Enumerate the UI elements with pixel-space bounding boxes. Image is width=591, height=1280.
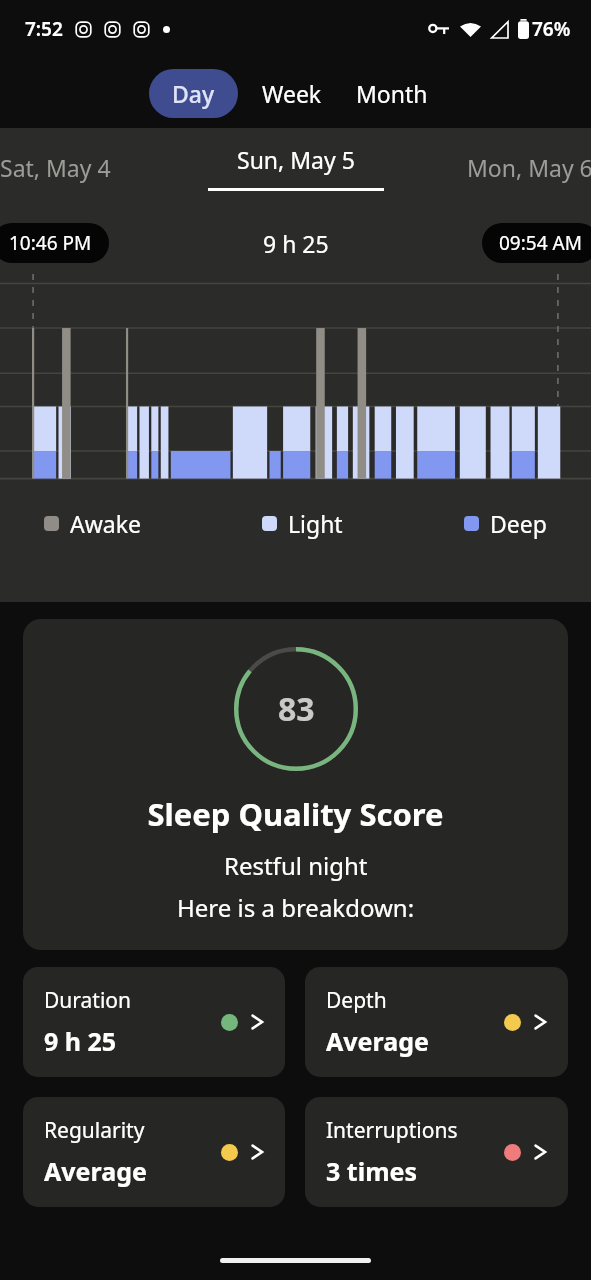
button[interactable]: 83 — [23, 619, 568, 950]
button[interactable]: Regularity — [23, 1097, 285, 1207]
staticText: 10:46 PM — [9, 230, 92, 256]
staticText: Awake — [70, 508, 141, 539]
staticText: 9 h 25 — [44, 1024, 117, 1058]
button[interactable]: Week — [247, 69, 337, 118]
staticText: Here is a breakdown: — [177, 891, 415, 924]
staticText: Light — [288, 508, 343, 539]
other: Open Regularity — [251, 1142, 264, 1162]
staticText: 7:52 — [25, 16, 63, 42]
other: Open Duration — [251, 1012, 264, 1032]
other: Open Interruptions — [534, 1142, 547, 1162]
button[interactable]: Mon, May 6 — [439, 136, 591, 199]
staticText: Regularity — [44, 1116, 145, 1145]
staticText: Week — [262, 78, 322, 109]
other: Open Depth — [534, 1012, 547, 1032]
staticText: 3 times — [326, 1154, 417, 1188]
staticText: Restful night — [224, 849, 368, 882]
staticText: Deep — [490, 508, 547, 539]
button[interactable]: Duration — [23, 967, 285, 1077]
staticText: 76% — [532, 16, 571, 42]
staticText: Mon, May 6 — [467, 152, 591, 183]
staticText: Duration — [44, 986, 132, 1015]
button[interactable]: Month — [341, 69, 443, 118]
staticText: 09:54 AM — [499, 230, 582, 256]
staticText: Day — [172, 78, 215, 109]
button[interactable]: Day — [149, 69, 238, 118]
button[interactable]: Sat, May 4 — [0, 136, 139, 199]
staticText: Average — [44, 1154, 147, 1188]
staticText: Sun, May 5 — [237, 144, 355, 175]
button[interactable]: Sun, May 5 — [208, 144, 384, 191]
staticText: Depth — [326, 986, 387, 1015]
staticText: Month — [356, 78, 428, 109]
staticText: 9 h 25 — [263, 228, 329, 259]
button[interactable]: Interruptions — [305, 1097, 568, 1207]
staticText: 83 — [278, 687, 315, 731]
staticText: Interruptions — [326, 1116, 458, 1145]
staticText: Sleep Quality Score — [147, 793, 444, 835]
button[interactable]: Depth — [305, 967, 568, 1077]
staticText: Average — [326, 1024, 429, 1058]
staticText: Sat, May 4 — [0, 152, 111, 183]
